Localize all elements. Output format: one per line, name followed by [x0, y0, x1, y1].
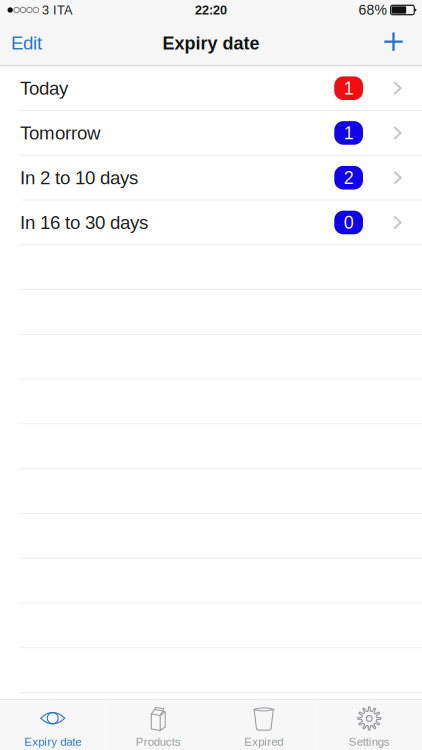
staticText: Expired	[244, 735, 283, 748]
button[interactable]: Settings	[316, 699, 422, 750]
staticText: 1	[344, 78, 354, 98]
button[interactable]: In 16 to 30 days	[0, 201, 422, 245]
button[interactable]: Add	[371, 20, 422, 66]
staticText: 22:20	[195, 3, 227, 17]
button[interactable]: Expired	[211, 699, 316, 750]
staticText: Today	[20, 78, 68, 99]
button[interactable]: Tomorrow	[0, 111, 422, 156]
staticText: In 2 to 10 days	[20, 167, 138, 188]
staticText: Products	[136, 735, 181, 748]
button[interactable]: Edit	[0, 20, 57, 66]
staticText: In 16 to 30 days	[20, 212, 148, 233]
staticText: Edit	[11, 33, 42, 54]
staticText: Tomorrow	[20, 122, 100, 143]
button[interactable]: In 2 to 10 days	[0, 156, 422, 201]
staticText: Expiry date	[24, 735, 81, 748]
staticText: 1	[344, 123, 354, 143]
button[interactable]: Today	[0, 66, 422, 111]
staticText: 3 ITA	[42, 3, 72, 17]
button[interactable]: Products	[105, 699, 211, 750]
staticText: Settings	[349, 735, 390, 748]
staticText: Expiry date	[162, 33, 259, 53]
staticText: 2	[344, 168, 354, 188]
button[interactable]: Expiry date	[0, 699, 105, 750]
staticText: 68%	[359, 2, 387, 18]
staticText: 0	[344, 212, 354, 232]
